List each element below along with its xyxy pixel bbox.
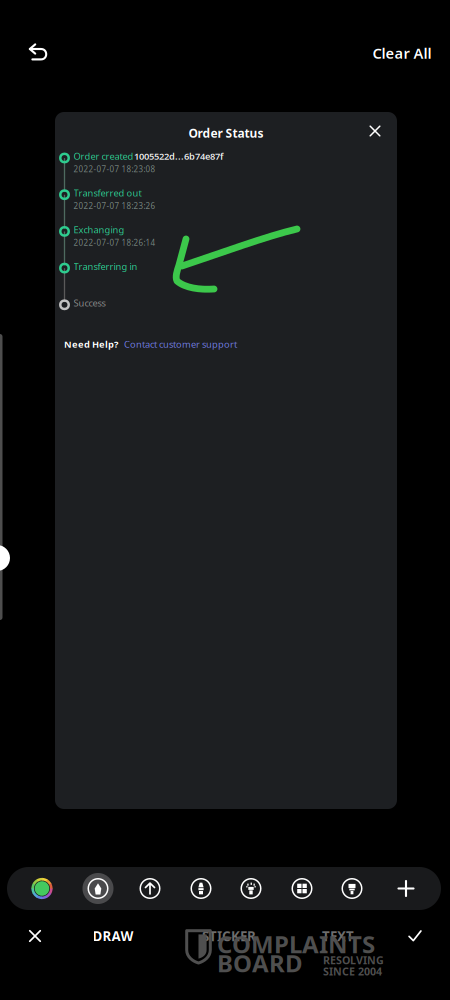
staticText: STICKER: [202, 927, 256, 945]
staticText: 2022-07-07 18:23:08: [73, 164, 155, 174]
button[interactable]: Clear All: [366, 31, 438, 75]
button[interactable]: Close: [359, 115, 391, 147]
button[interactable]: Glow pen: [233, 870, 269, 906]
staticText: Clear All: [372, 43, 431, 63]
button[interactable]: Marker: [183, 870, 219, 906]
button[interactable]: Eraser: [334, 870, 370, 906]
staticText: DRAW: [92, 927, 133, 945]
staticText: RESOLVING: [323, 953, 384, 967]
button[interactable]: Arrow: [132, 870, 168, 906]
staticText: Success: [73, 297, 105, 309]
staticText: Transferred out: [73, 187, 141, 199]
button[interactable]: Color: [22, 867, 62, 910]
staticText: 2022-07-07 18:26:14: [73, 237, 155, 248]
staticText: Transferring in: [73, 260, 137, 272]
staticText: TEXT: [322, 927, 354, 945]
button[interactable]: TEXT: [303, 916, 373, 956]
button[interactable]: Contact customer support: [124, 338, 237, 350]
staticText: COMPLAINTS: [217, 928, 375, 960]
button[interactable]: Mosaic: [284, 870, 320, 906]
button[interactable]: Add: [388, 867, 424, 910]
button[interactable]: Done: [392, 916, 438, 956]
staticText: BOARD: [217, 947, 303, 979]
staticText: 2022-07-07 18:23:26: [73, 201, 155, 211]
button[interactable]: Undo: [15, 31, 61, 75]
staticText: Contact customer support: [124, 338, 237, 350]
staticText: 1005522d...6b74e87f: [134, 150, 223, 162]
button[interactable]: DRAW: [78, 916, 148, 956]
staticText: Need Help?: [64, 338, 118, 350]
button[interactable]: Pen: [80, 870, 116, 906]
staticText: Order created: [73, 150, 133, 162]
staticText: SINCE 2004: [323, 964, 382, 978]
staticText: Order Status: [188, 125, 263, 141]
button[interactable]: Cancel: [12, 916, 58, 956]
staticText: Exchanging: [73, 223, 124, 236]
button[interactable]: STICKER: [194, 916, 264, 956]
